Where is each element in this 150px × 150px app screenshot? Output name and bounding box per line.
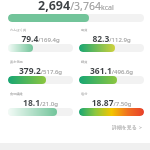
staticText: 2,694/3,764kcal bbox=[38, 0, 114, 14]
staticText: 塩分 bbox=[81, 92, 88, 96]
staticText: 糖質 bbox=[81, 60, 88, 64]
staticText: たんぱく質 bbox=[10, 28, 27, 32]
staticText: 82.3/112.9g bbox=[79, 33, 144, 45]
staticText: 79.4/169.4g bbox=[8, 33, 73, 45]
staticText: 379.2/517.6g bbox=[8, 65, 73, 77]
staticText: 脂質 bbox=[81, 28, 88, 32]
button[interactable]: 詳細を見る ＞ bbox=[110, 123, 145, 132]
staticText: 361.1/496.6g bbox=[79, 65, 144, 77]
staticText: 食物繊維 bbox=[10, 92, 23, 96]
staticText: 18.1/21.0g bbox=[8, 97, 73, 109]
staticText: 炭水化物 bbox=[10, 60, 23, 64]
staticText: 詳細を見る ＞ bbox=[112, 124, 143, 131]
staticText: 18.87/7.50g bbox=[79, 97, 144, 109]
